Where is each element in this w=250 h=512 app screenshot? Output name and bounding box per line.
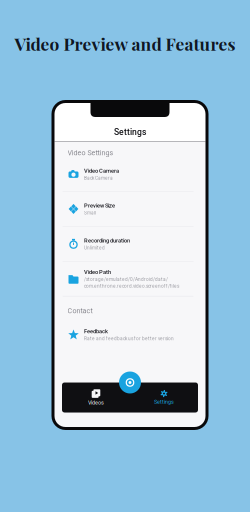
staticText: Video Settings	[67, 149, 113, 157]
button[interactable]: Preview Size	[54, 192, 205, 226]
button[interactable]: Video Camera	[54, 157, 205, 191]
staticText: Video Preview and Features	[14, 32, 235, 55]
staticText: Videos	[88, 399, 104, 406]
staticText: Settings	[154, 399, 174, 405]
button[interactable]: Feedback	[54, 317, 205, 352]
staticText: /storage/emulated/0/Android/data/	[84, 277, 168, 282]
staticText: Preview Size	[84, 202, 115, 209]
staticText: com.enthrone.record.video.screenoff/file…	[84, 283, 179, 289]
button[interactable]: Video Path	[54, 262, 205, 296]
staticText: Recording duration	[84, 237, 130, 244]
button[interactable]: Recording duration	[54, 227, 205, 261]
staticText: Rate and feedback us for better version	[84, 336, 174, 341]
staticText: Small	[84, 210, 96, 216]
button[interactable]: Settings	[130, 382, 198, 412]
button[interactable]: Videos	[62, 382, 130, 412]
staticText: Unlimited	[84, 245, 105, 250]
staticText: Video Path	[84, 269, 111, 275]
staticText: Settings	[114, 127, 146, 137]
staticText: Contact	[67, 307, 92, 315]
staticText: Feedback	[84, 328, 108, 335]
staticText: Back Camera	[84, 175, 113, 181]
staticText: Video Camera	[84, 167, 119, 174]
